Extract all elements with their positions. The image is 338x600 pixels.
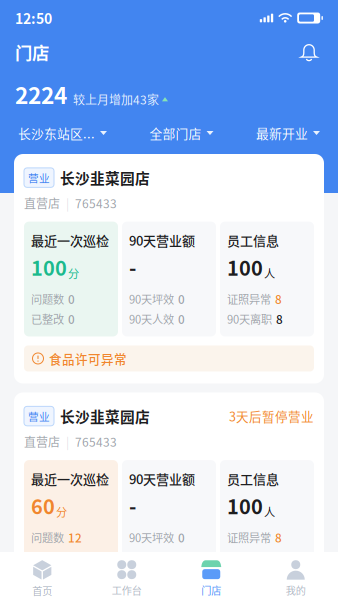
staticText: 直营店 bbox=[24, 194, 60, 212]
staticText: 已整改 bbox=[31, 549, 64, 565]
staticText: 食品许可异常 bbox=[49, 349, 127, 367]
staticText: 分 bbox=[56, 504, 67, 520]
button[interactable]: 营业 bbox=[14, 392, 324, 587]
button[interactable]: 工作台 bbox=[84, 552, 169, 600]
staticText: 长沙东站区... bbox=[18, 124, 95, 142]
staticText: 100 bbox=[31, 252, 67, 281]
button[interactable]: 营业 bbox=[14, 154, 324, 383]
button[interactable]: 最新开业 bbox=[253, 119, 323, 147]
staticText: 12 bbox=[68, 549, 82, 566]
staticText: 最近一次巡检 bbox=[31, 469, 109, 488]
staticText: 100 bbox=[227, 252, 263, 281]
staticText: 0 bbox=[178, 310, 185, 327]
staticText: 长沙韭菜园店 bbox=[60, 167, 150, 188]
staticText: 100 bbox=[227, 491, 263, 520]
staticText: 2224 bbox=[15, 78, 67, 110]
staticText: 我的 bbox=[286, 583, 306, 597]
staticText: 首页 bbox=[32, 583, 52, 598]
staticText: 直营店 bbox=[24, 433, 60, 450]
staticText: 员工信息 bbox=[227, 469, 279, 488]
button[interactable]: 我的 bbox=[253, 552, 338, 600]
staticText: 765433 bbox=[75, 433, 117, 450]
staticText: 0 bbox=[68, 310, 75, 327]
staticText: 最近一次巡检 bbox=[31, 231, 109, 249]
button[interactable]: 全部门店 bbox=[146, 119, 216, 147]
staticText: 证照异常 bbox=[227, 529, 271, 546]
staticText: 门店 bbox=[15, 39, 49, 65]
staticText: | bbox=[60, 194, 75, 212]
staticText: 长沙韭菜园店 bbox=[60, 405, 150, 427]
button[interactable]: 通知 bbox=[295, 38, 323, 66]
staticText: 8 bbox=[276, 310, 283, 327]
staticText: 问题数 bbox=[31, 529, 64, 546]
staticText: 营业 bbox=[28, 170, 50, 185]
staticText: 0 bbox=[178, 529, 185, 546]
staticText: 90天人效 bbox=[129, 311, 174, 327]
staticText: 人 bbox=[264, 504, 275, 520]
staticText: 较上月增加43家 bbox=[73, 90, 159, 108]
staticText: 90天人效 bbox=[129, 549, 174, 565]
staticText: - bbox=[129, 491, 136, 520]
staticText: 0 bbox=[178, 549, 185, 566]
staticText: - bbox=[129, 252, 136, 281]
staticText: | bbox=[60, 433, 75, 450]
staticText: 12:50 bbox=[15, 8, 52, 28]
staticText: 0 bbox=[68, 290, 75, 307]
staticText: 员工信息 bbox=[227, 231, 279, 249]
staticText: 12 bbox=[68, 529, 82, 546]
staticText: 90天营业额 bbox=[129, 231, 195, 249]
staticText: 问题数 bbox=[31, 291, 64, 307]
button[interactable]: 首页 bbox=[0, 552, 84, 600]
staticText: 最新开业 bbox=[256, 124, 308, 142]
staticText: 8 bbox=[275, 529, 282, 546]
staticText: 全部门店 bbox=[149, 124, 201, 142]
staticText: 8 bbox=[276, 549, 283, 566]
staticText: 8 bbox=[275, 290, 282, 307]
staticText: 工作台 bbox=[112, 583, 142, 597]
staticText: 门店 bbox=[201, 583, 221, 597]
staticText: 营业 bbox=[28, 408, 50, 424]
staticText: 90天离职 bbox=[227, 549, 272, 565]
staticText: 0 bbox=[178, 290, 185, 307]
staticText: 90天坪效 bbox=[129, 529, 174, 546]
staticText: 90天坪效 bbox=[129, 291, 174, 307]
staticText: 分 bbox=[68, 265, 79, 281]
staticText: 60 bbox=[31, 491, 55, 520]
button[interactable]: 长沙东站区... bbox=[15, 119, 110, 147]
staticText: 3天后暂停营业 bbox=[229, 407, 314, 425]
staticText: 证照异常 bbox=[227, 291, 271, 307]
staticText: 已整改 bbox=[31, 311, 64, 327]
staticText: 765433 bbox=[75, 194, 117, 212]
button[interactable]: 门店 bbox=[169, 552, 253, 600]
staticText: 90天离职 bbox=[227, 311, 272, 327]
staticText: 90天营业额 bbox=[129, 469, 195, 488]
staticText: 人 bbox=[264, 265, 275, 281]
